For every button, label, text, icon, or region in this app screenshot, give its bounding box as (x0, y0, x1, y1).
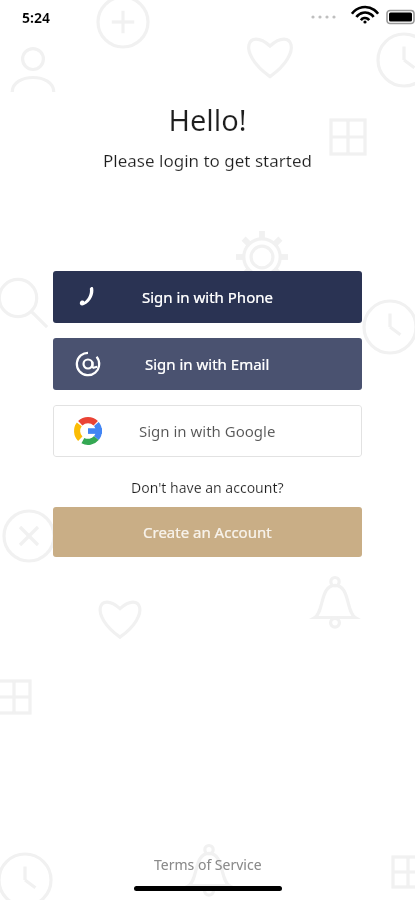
staticText: Hello! (168, 100, 247, 139)
staticText: Please login to get started (103, 149, 312, 172)
button[interactable]: Sign in with Google (53, 405, 362, 457)
staticText: 5:24 (22, 8, 50, 27)
button[interactable]: Sign in with Email (53, 338, 362, 390)
staticText: Don't have an account? (131, 478, 284, 497)
button[interactable]: Terms of Service (154, 855, 262, 874)
staticText: Sign in with Google (139, 421, 276, 441)
staticText: Create an Account (143, 522, 272, 542)
button[interactable]: Create an Account (53, 507, 362, 557)
staticText: Terms of Service (154, 855, 262, 874)
staticText: Sign in with Email (145, 354, 270, 374)
button[interactable]: Sign in with Phone (53, 271, 362, 323)
staticText: Sign in with Phone (142, 287, 273, 307)
